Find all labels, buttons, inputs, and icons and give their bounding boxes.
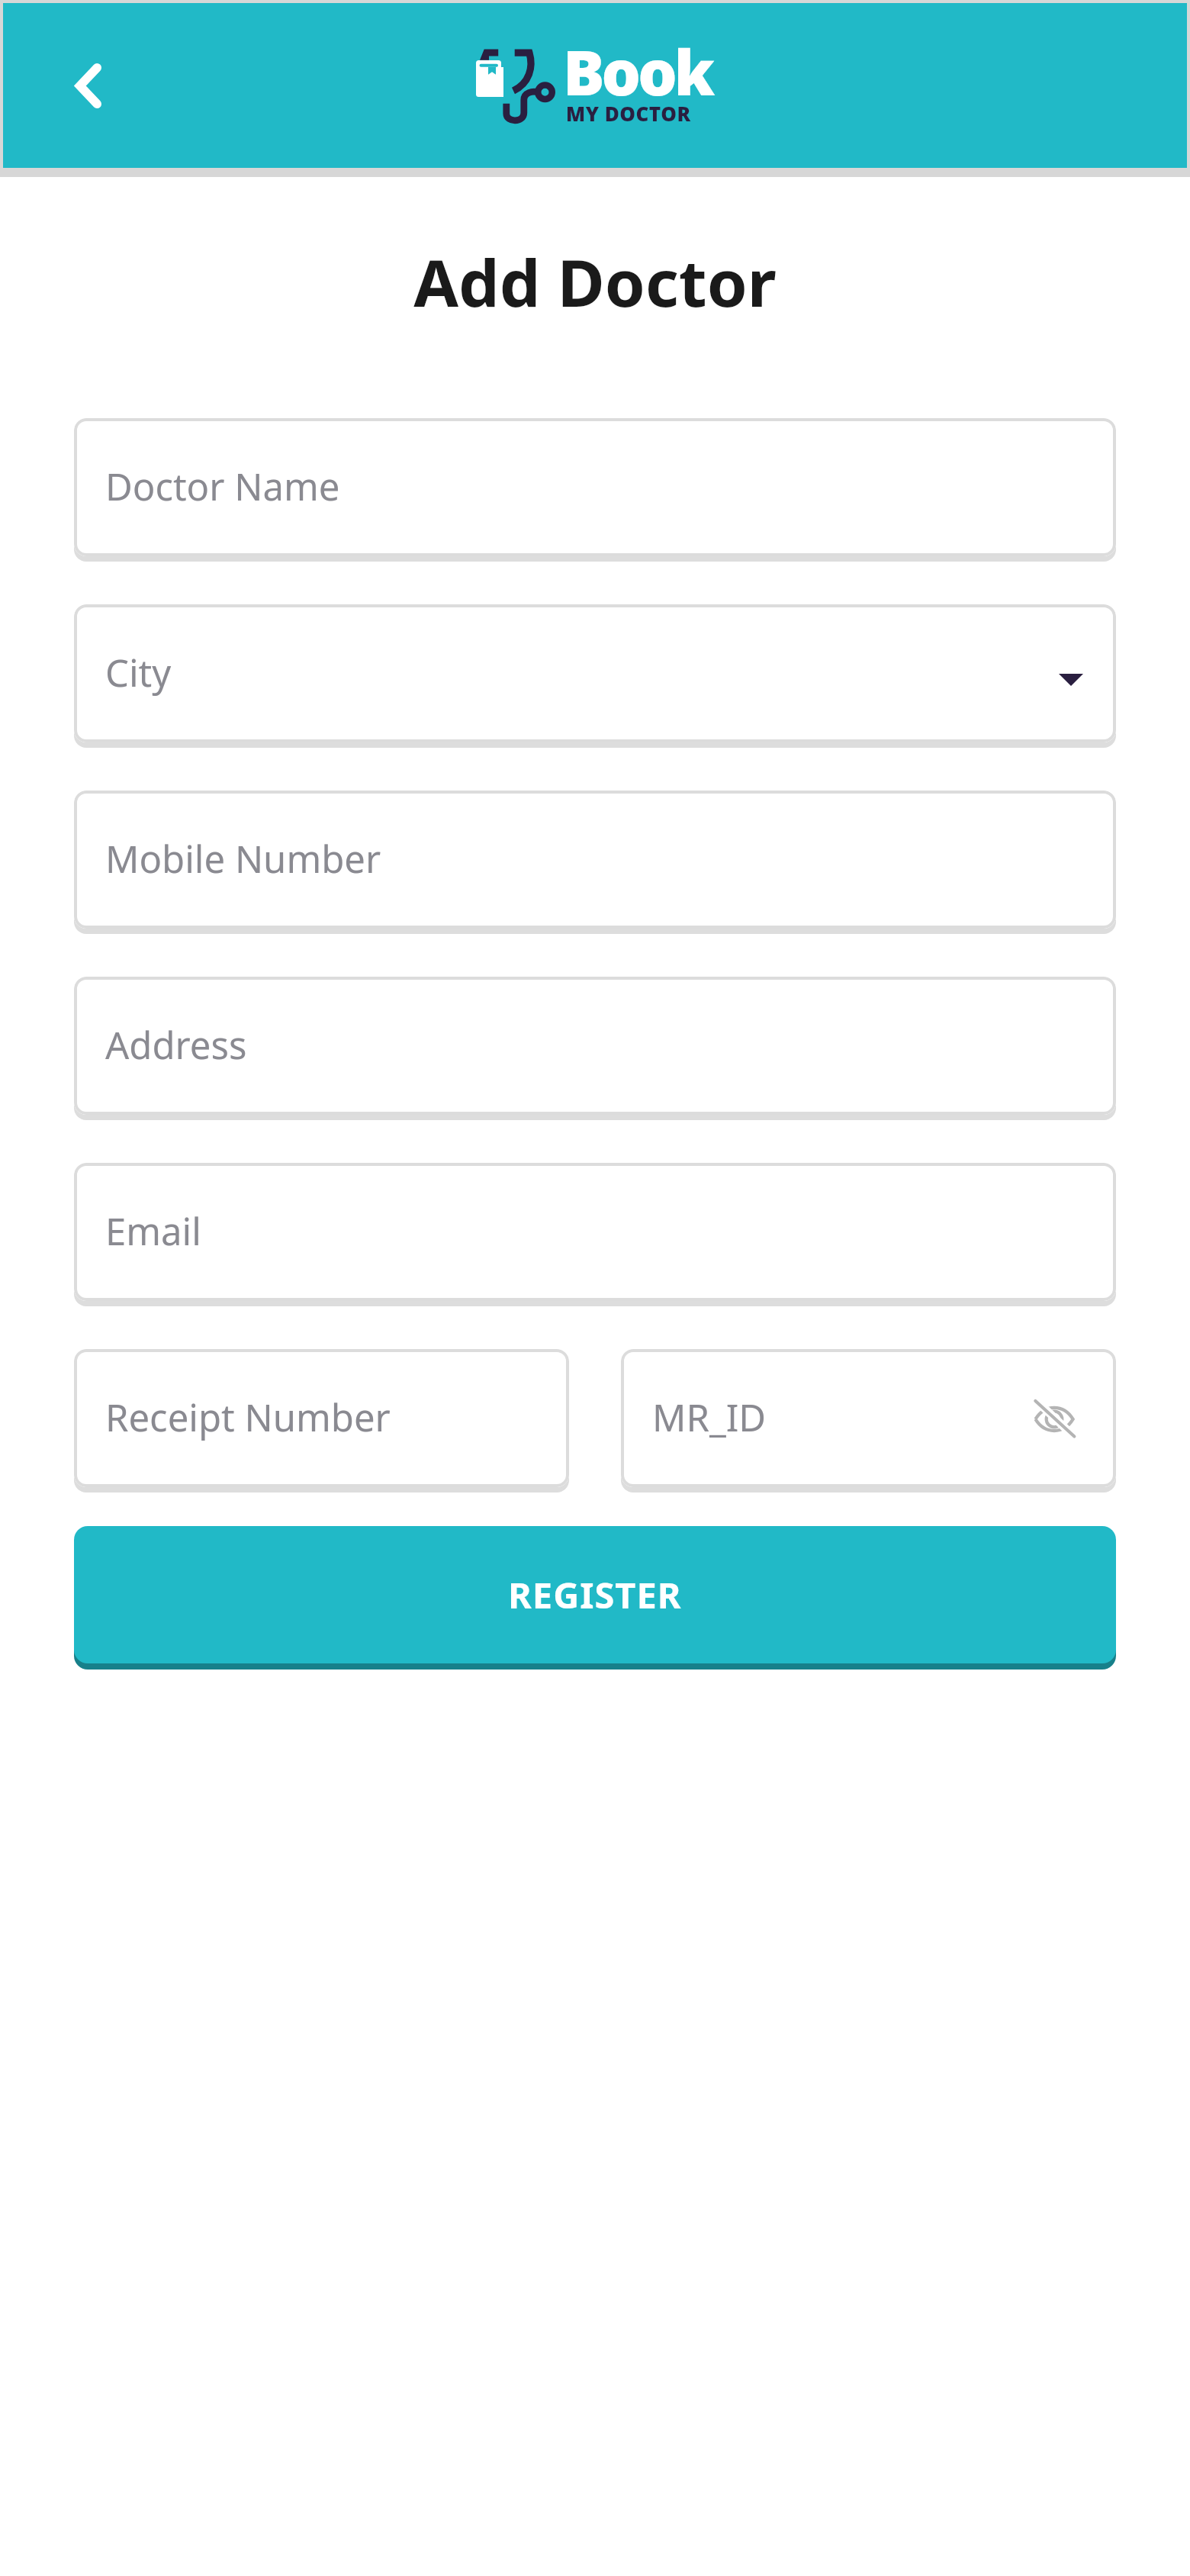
button[interactable]: Receipt Number — [74, 1349, 569, 1487]
staticText: Doctor Name — [105, 461, 340, 512]
button[interactable]: REGISTER — [74, 1526, 1116, 1663]
staticText: Address — [105, 1019, 247, 1071]
button[interactable]: Mobile Number — [74, 791, 1116, 929]
staticText: MY DOCTOR — [566, 100, 691, 127]
staticText: Mobile Number — [105, 833, 381, 884]
button[interactable]: Show MR_ID — [1033, 1400, 1076, 1437]
button[interactable]: City — [74, 604, 1116, 742]
button[interactable]: Back — [43, 40, 134, 131]
staticText: MR_ID — [652, 1392, 767, 1443]
button[interactable]: Email — [74, 1163, 1116, 1301]
staticText: Receipt Number — [105, 1392, 391, 1443]
staticText: REGISTER — [508, 1570, 682, 1619]
other: Open city list — [1059, 674, 1083, 686]
staticText: Add Doctor — [0, 237, 1190, 326]
staticText: Email — [105, 1206, 201, 1257]
button[interactable]: Doctor Name — [74, 418, 1116, 556]
button[interactable]: MR_ID — [621, 1349, 1116, 1487]
staticText: City — [105, 647, 172, 698]
button[interactable]: Address — [74, 977, 1116, 1115]
staticText: Book — [563, 29, 712, 113]
